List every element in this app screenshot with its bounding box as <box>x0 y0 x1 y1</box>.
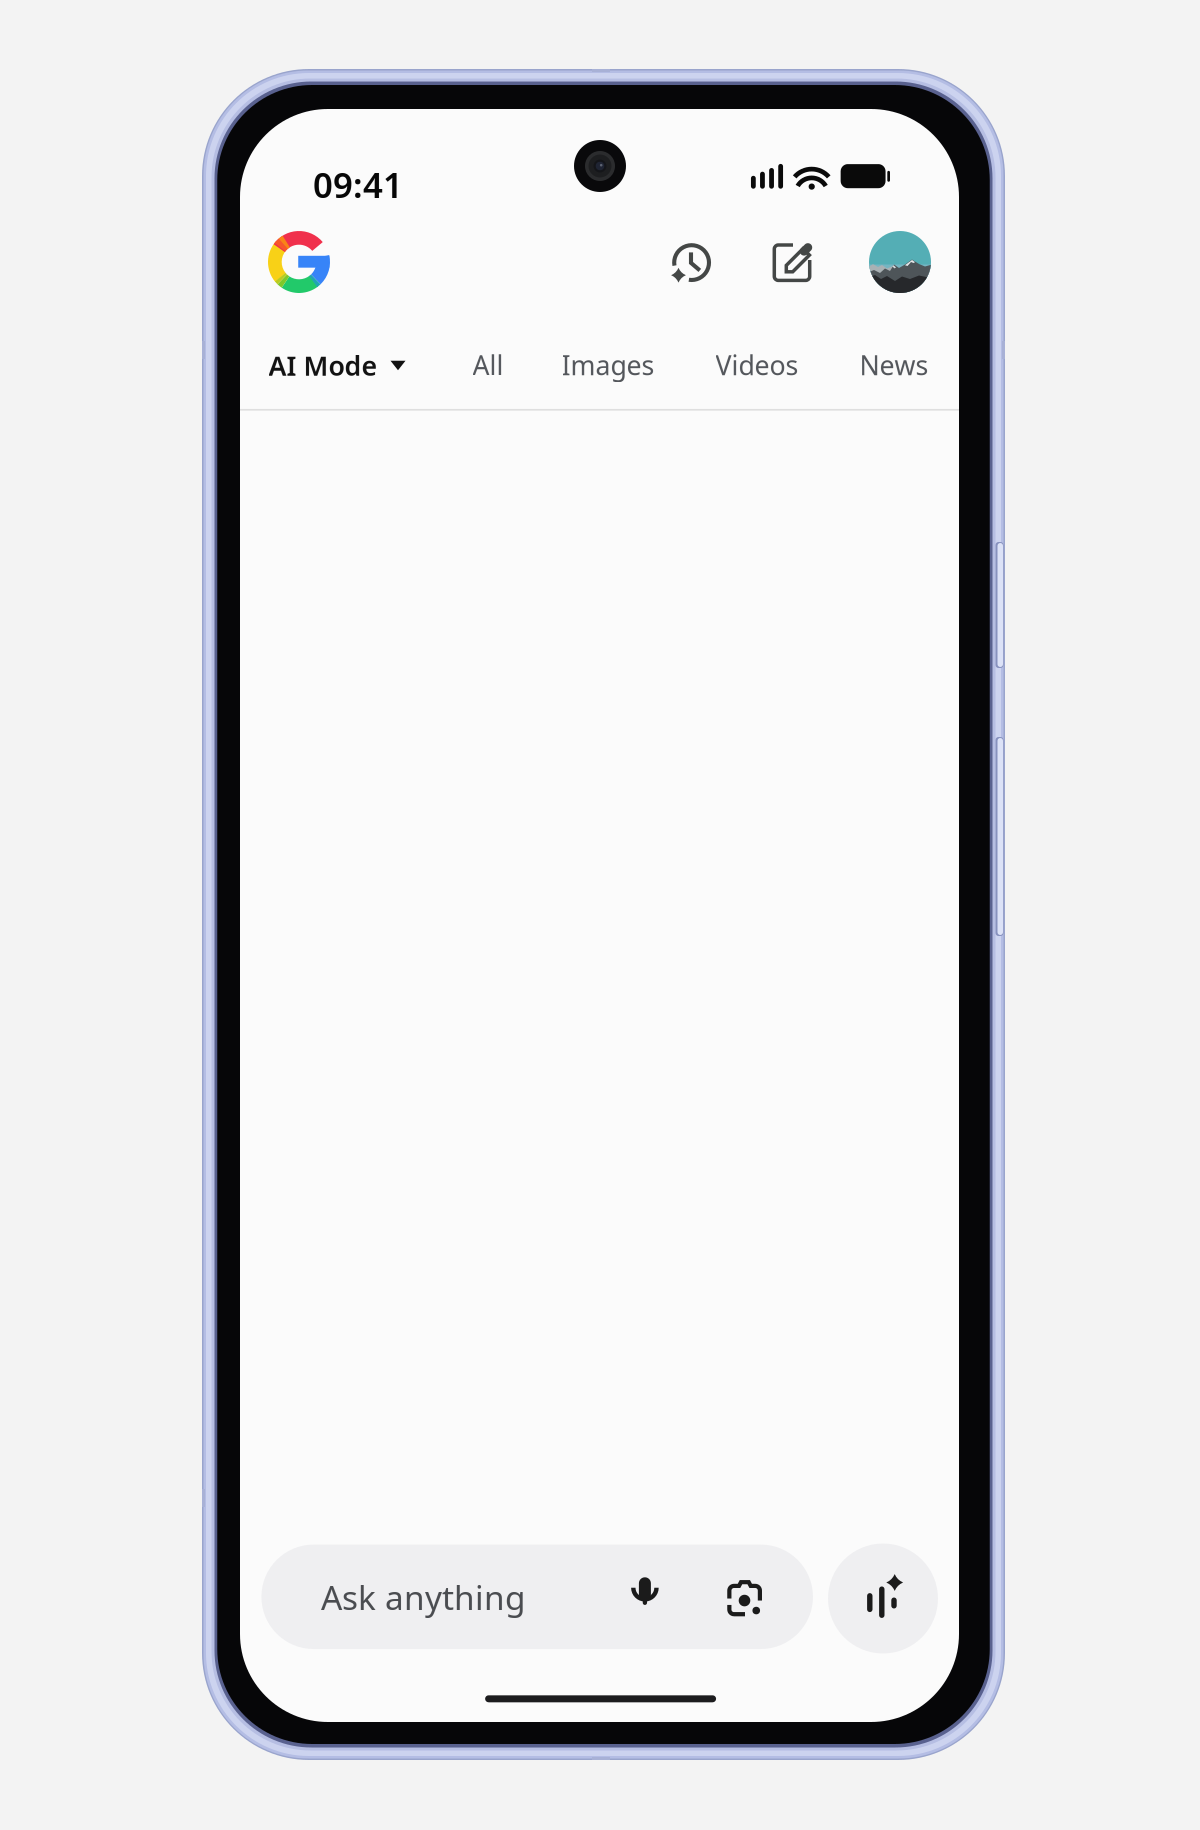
staticText: All <box>472 347 503 383</box>
staticText: AI Mode <box>268 348 377 383</box>
button[interactable]: Videos <box>701 333 812 397</box>
button[interactable]: Google <box>268 231 330 293</box>
button[interactable]: Account <box>869 231 931 293</box>
button[interactable]: News <box>845 333 942 397</box>
button[interactable]: Images <box>547 333 668 397</box>
button[interactable]: Ask anything <box>261 1544 813 1649</box>
button[interactable]: All <box>458 333 517 397</box>
button[interactable]: Search history <box>661 231 723 293</box>
staticText: Images <box>561 347 654 383</box>
button[interactable]: Google Live <box>828 1543 938 1654</box>
button[interactable]: AI Mode <box>262 334 411 397</box>
staticText: News <box>859 347 928 383</box>
staticText: Videos <box>715 347 798 383</box>
staticText: 09:41 <box>313 161 403 207</box>
staticText: Ask anything <box>321 1575 526 1619</box>
button[interactable]: New search <box>761 231 823 293</box>
